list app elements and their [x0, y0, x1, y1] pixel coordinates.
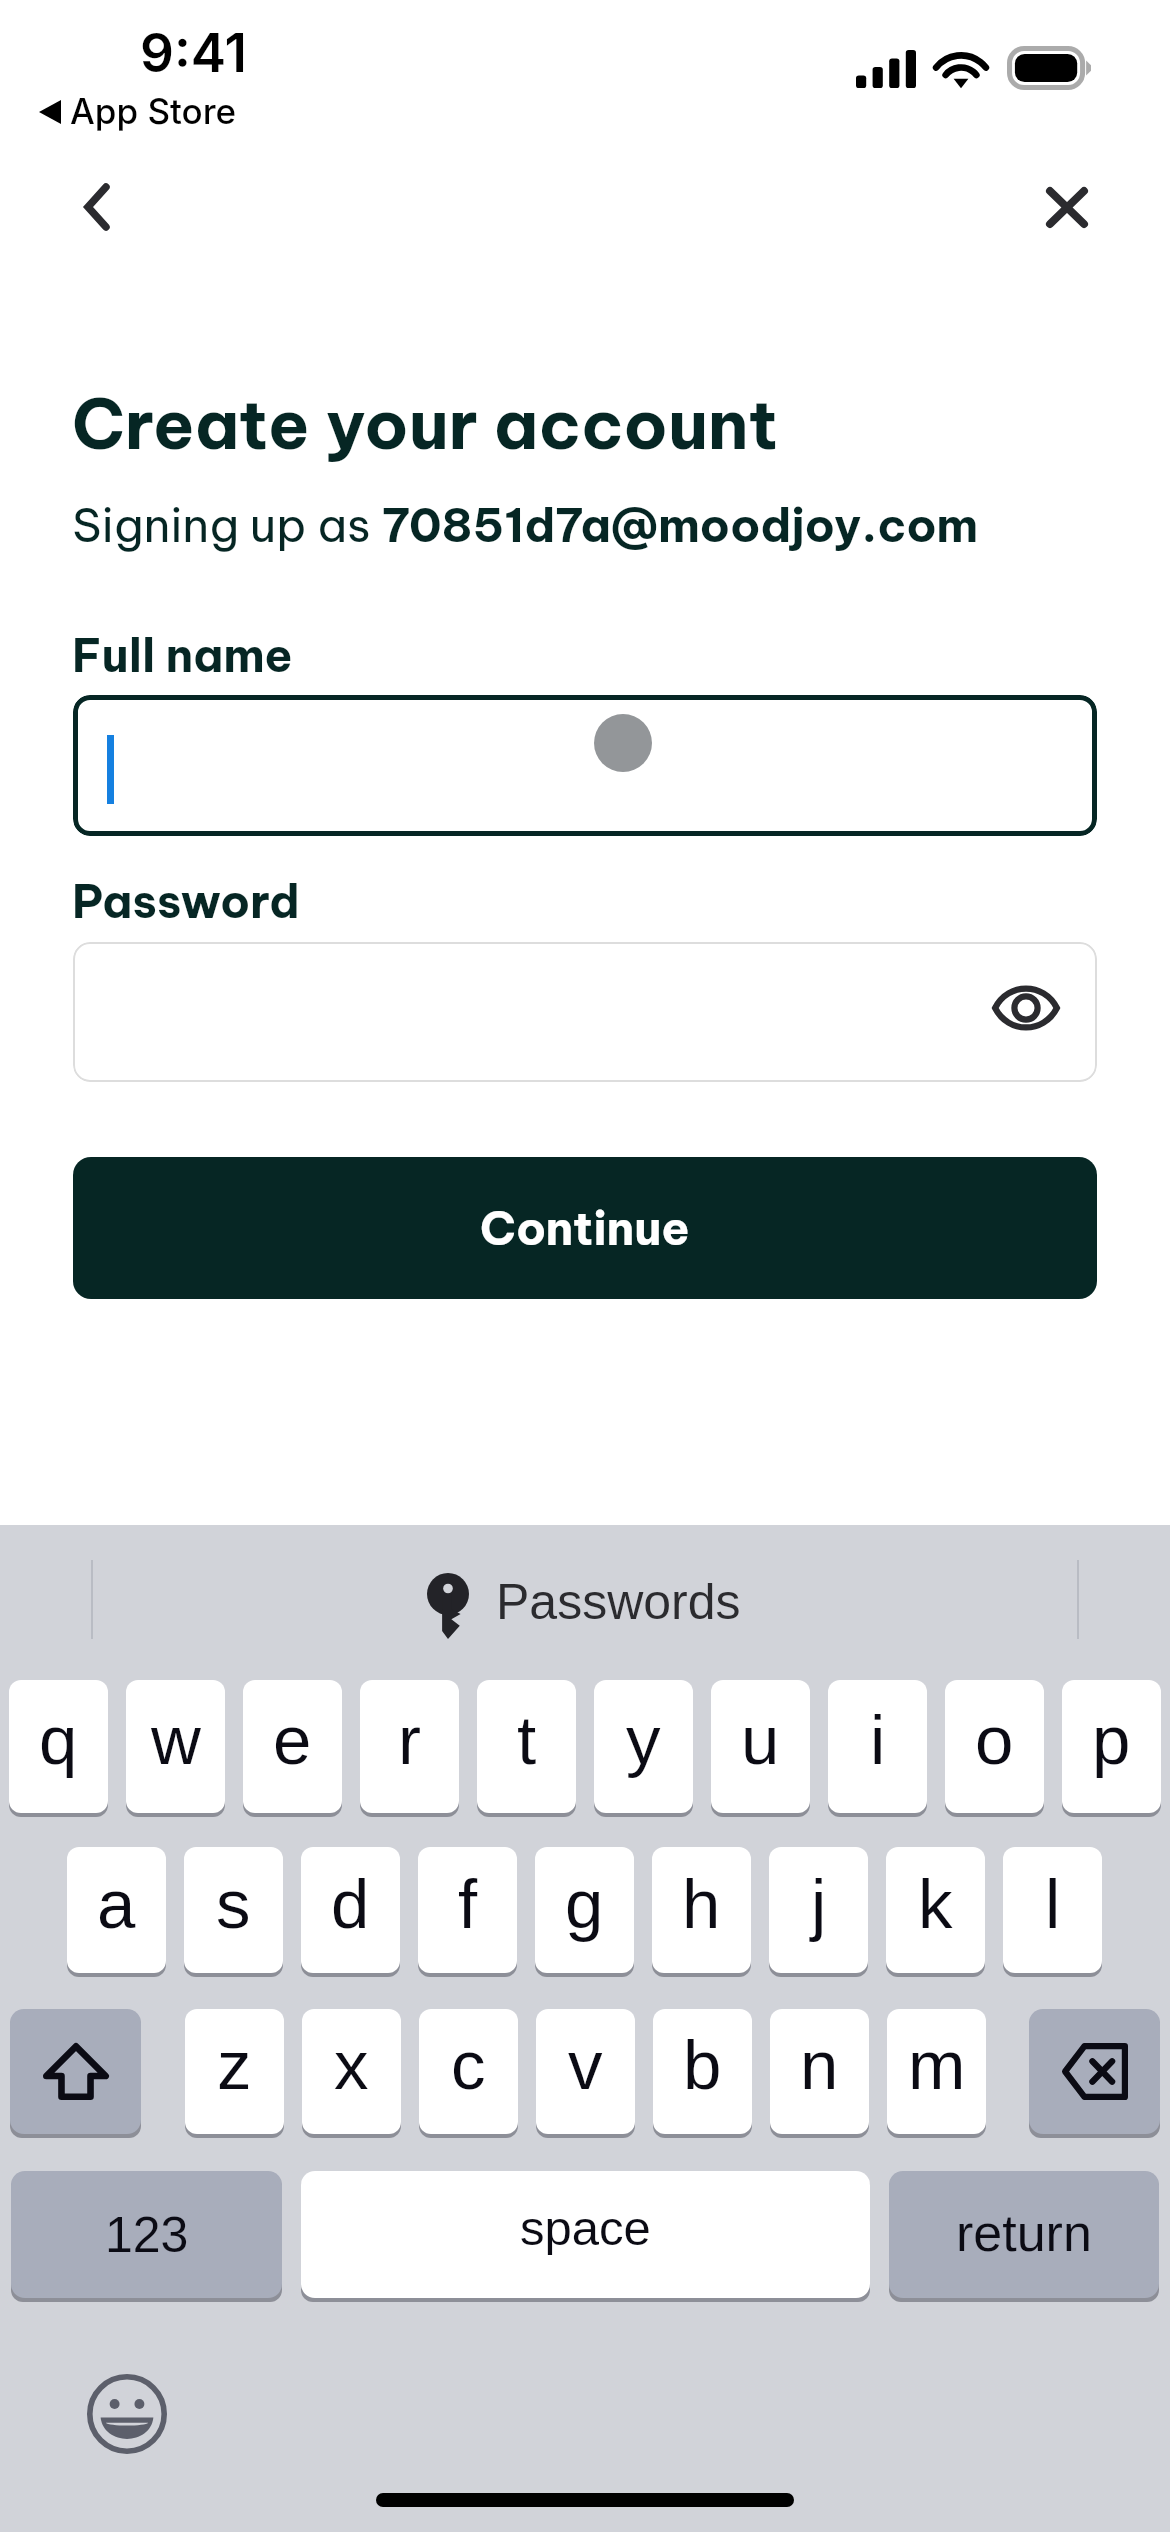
- button[interactable]: k: [886, 1847, 985, 1973]
- staticText: k: [918, 1866, 953, 1943]
- button[interactable]: s: [184, 1847, 283, 1973]
- button[interactable]: a: [67, 1847, 166, 1973]
- button[interactable]: 123: [11, 2171, 282, 2298]
- staticText: n: [800, 2027, 839, 2104]
- staticText: f: [458, 1866, 478, 1943]
- button[interactable]: space: [301, 2171, 870, 2298]
- staticText: b: [683, 2027, 722, 2104]
- staticText: s: [216, 1866, 251, 1943]
- staticText: e: [273, 1702, 312, 1779]
- button[interactable]: t: [477, 1680, 576, 1813]
- staticText: Password: [72, 872, 300, 930]
- staticText: Passwords: [496, 1574, 741, 1630]
- button[interactable]: x: [302, 2009, 401, 2134]
- button[interactable]: Back: [57, 167, 137, 247]
- staticText: Signing up as: [72, 495, 382, 554]
- staticText: 9:41: [140, 21, 247, 85]
- button[interactable]: j: [769, 1847, 868, 1973]
- button[interactable]: Emoji keyboard: [86, 2373, 168, 2455]
- staticText: y: [626, 1702, 661, 1779]
- staticText: w: [151, 1702, 201, 1779]
- staticText: Full name: [72, 626, 293, 684]
- button[interactable]: Backspace: [1029, 2009, 1160, 2134]
- button[interactable]: c: [419, 2009, 518, 2134]
- staticText: App Store: [70, 90, 237, 132]
- staticText: j: [811, 1866, 827, 1943]
- button[interactable]: i: [828, 1680, 927, 1813]
- button[interactable]: [73, 695, 1097, 836]
- button[interactable]: p: [1062, 1680, 1161, 1813]
- button[interactable]: Show password: [73, 942, 1097, 1082]
- button[interactable]: Shift: [10, 2009, 141, 2134]
- staticText: l: [1045, 1866, 1061, 1943]
- staticText: return: [956, 2204, 1092, 2262]
- button[interactable]: r: [360, 1680, 459, 1813]
- staticText: r: [398, 1702, 421, 1779]
- staticText: m: [908, 2027, 966, 2104]
- button[interactable]: z: [185, 2009, 284, 2134]
- staticText: c: [451, 2027, 486, 2104]
- staticText: u: [741, 1702, 780, 1779]
- button[interactable]: v: [536, 2009, 635, 2134]
- staticText: d: [331, 1866, 370, 1943]
- button[interactable]: y: [594, 1680, 693, 1813]
- staticText: a: [97, 1866, 136, 1943]
- staticText: x: [334, 2027, 369, 2104]
- button[interactable]: b: [653, 2009, 752, 2134]
- button[interactable]: f: [418, 1847, 517, 1973]
- staticText: g: [565, 1866, 604, 1943]
- staticText: Create your account: [72, 381, 778, 467]
- button[interactable]: w: [126, 1680, 225, 1813]
- button[interactable]: h: [652, 1847, 751, 1973]
- staticText: space: [520, 2201, 651, 2256]
- staticText: v: [568, 2027, 603, 2104]
- staticText: t: [517, 1702, 537, 1779]
- button[interactable]: m: [887, 2009, 986, 2134]
- staticText: o: [975, 1702, 1014, 1779]
- button[interactable]: Show password: [986, 968, 1066, 1048]
- button[interactable]: n: [770, 2009, 869, 2134]
- button[interactable]: e: [243, 1680, 342, 1813]
- button[interactable]: Continue: [73, 1157, 1097, 1299]
- button[interactable]: l: [1003, 1847, 1102, 1973]
- staticText: i: [870, 1702, 886, 1779]
- button[interactable]: g: [535, 1847, 634, 1973]
- staticText: Continue: [480, 1199, 690, 1257]
- staticText: 123: [105, 2207, 189, 2263]
- staticText: h: [682, 1866, 721, 1943]
- button[interactable]: d: [301, 1847, 400, 1973]
- button[interactable]: Passwords: [427, 1573, 741, 1639]
- staticText: q: [39, 1702, 78, 1779]
- button[interactable]: return: [889, 2171, 1159, 2298]
- button[interactable]: o: [945, 1680, 1044, 1813]
- button[interactable]: q: [9, 1680, 108, 1813]
- button[interactable]: u: [711, 1680, 810, 1813]
- staticText: p: [1092, 1702, 1131, 1779]
- staticText: 70851d7a@moodjoy.com: [382, 495, 979, 554]
- button[interactable]: Close: [1027, 167, 1107, 247]
- staticText: z: [217, 2027, 252, 2104]
